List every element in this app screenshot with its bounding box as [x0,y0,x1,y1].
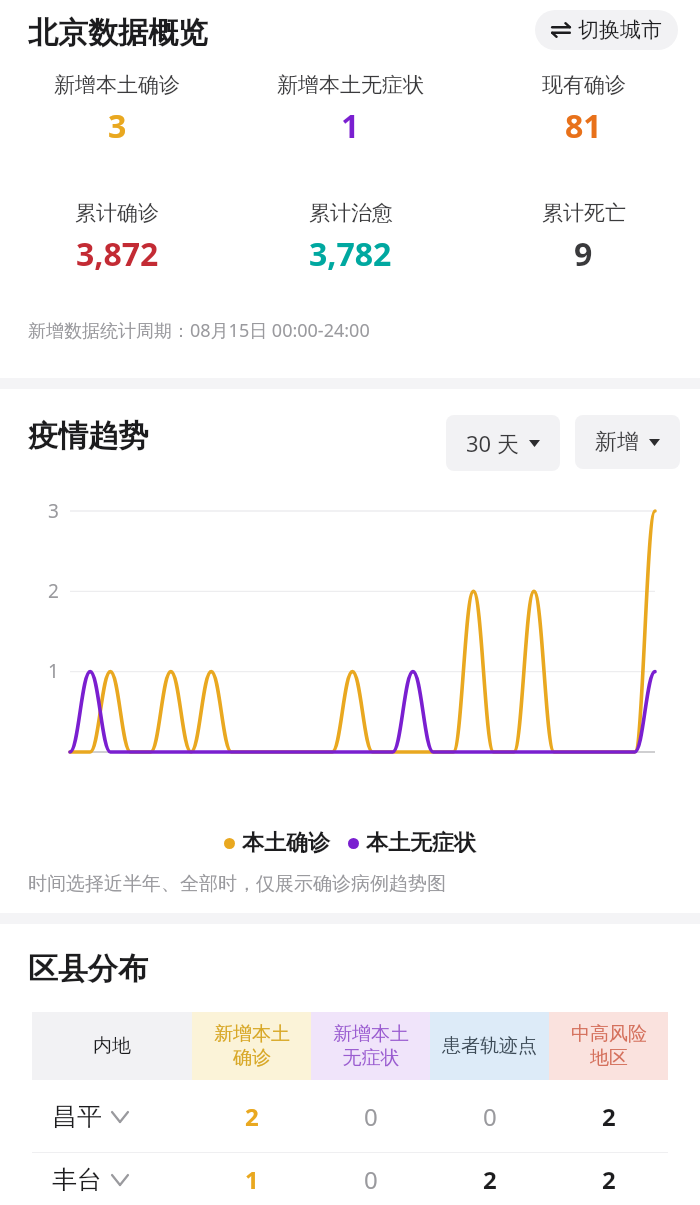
staticText: 30 天 [466,428,519,458]
staticText: 2 [602,1163,616,1196]
staticText: 2 [483,1163,497,1196]
staticText: 3 [108,104,127,148]
button[interactable]: 昌平 [32,1080,668,1152]
button[interactable]: 30 天 [446,415,560,471]
staticText: 3 [48,498,59,524]
staticText: 1 [341,104,360,148]
staticText: 新增本土确诊 [54,72,180,98]
staticText: 累计死亡 [542,200,626,226]
staticText: 丰台 [52,1164,102,1195]
staticText: 区县分布 [28,950,148,988]
button[interactable]: 新增本土 无症状 [311,1012,430,1080]
staticText: 中高风险 地区 [571,1022,647,1070]
staticText: 新增本土 无症状 [333,1022,409,1070]
staticText: 1 [245,1163,259,1196]
staticText: 新增 [595,428,639,456]
button[interactable]: 新增本土 确诊 [192,1012,311,1080]
button[interactable]: Switch city [535,10,678,50]
staticText: 昌平 [52,1101,102,1132]
other: Switch city [551,20,571,40]
button[interactable]: 内地 [32,1012,192,1080]
staticText: 2 [48,578,59,604]
staticText: 81 [565,104,602,148]
staticText: 新增数据统计周期：08月15日 00:00-24:00 [28,318,370,343]
staticText: 疫情趋势 [28,417,148,455]
staticText: 3,782 [309,232,392,276]
staticText: 患者轨迹点 [442,1034,537,1058]
staticText: 内地 [93,1034,131,1058]
staticText: 北京数据概览 [28,14,208,52]
staticText: 1 [48,658,59,679]
staticText: 新增本土 确诊 [214,1022,290,1070]
staticText: 2 [602,1100,616,1133]
button[interactable]: 中高风险 地区 [549,1012,668,1080]
staticText: 新增本土无症状 [277,72,424,98]
staticText: 3,872 [76,232,159,276]
staticText: 0 [364,1163,378,1196]
staticText: 2 [245,1100,259,1133]
staticText: 0 [364,1100,378,1133]
staticText: 累计确诊 [75,200,159,226]
staticText: 切换城市 [578,17,662,43]
staticText: 现有确诊 [542,72,626,98]
staticText: 9 [574,232,593,276]
staticText: 时间选择近半年、全部时，仅展示确诊病例趋势图 [28,872,446,896]
staticText: 累计治愈 [309,200,393,226]
staticText: 0 [483,1100,497,1133]
button[interactable]: 丰台 [32,1153,668,1205]
staticText: 本土无症状 [366,829,476,857]
button[interactable]: 患者轨迹点 [430,1012,549,1080]
button[interactable]: 新增 [575,415,680,469]
staticText: 本土确诊 [242,829,330,857]
